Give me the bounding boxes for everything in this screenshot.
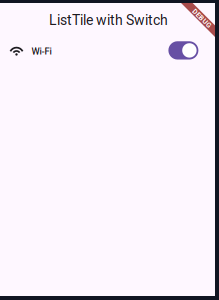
button[interactable]: Wi-Fi switch (168, 41, 198, 59)
staticText: Wi-Fi (31, 46, 51, 57)
staticText: DEBUG (190, 14, 214, 23)
staticText: ListTile with Switch (49, 12, 168, 28)
